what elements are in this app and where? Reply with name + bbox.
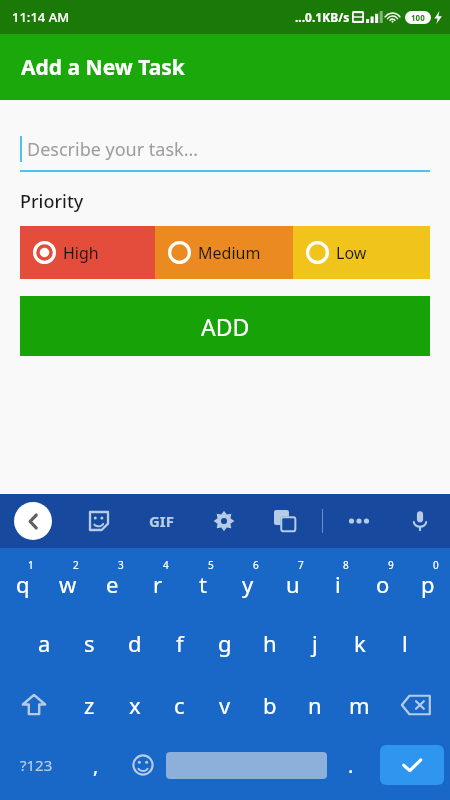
staticText: u: [286, 569, 300, 599]
button[interactable]: Enter: [380, 745, 444, 785]
staticText: ADD: [201, 311, 250, 342]
button[interactable]: Describe your task…: [20, 126, 430, 172]
button[interactable]: g: [202, 612, 247, 674]
button[interactable]: 7: [270, 552, 315, 612]
button[interactable]: Keyboard settings: [209, 506, 239, 536]
button[interactable]: 9: [360, 552, 405, 612]
staticText: g: [218, 628, 232, 658]
staticText: o: [376, 569, 390, 599]
button[interactable]: z: [67, 674, 112, 736]
button[interactable]: 6: [225, 552, 270, 612]
staticText: e: [106, 569, 119, 599]
staticText: ?123: [20, 755, 53, 775]
button[interactable]: 1: [0, 552, 45, 612]
button[interactable]: n: [292, 674, 337, 736]
button[interactable]: Backspace: [382, 674, 450, 736]
staticText: n: [308, 690, 322, 720]
button[interactable]: c: [157, 674, 202, 736]
staticText: Medium: [198, 242, 261, 264]
button[interactable]: k: [337, 612, 382, 674]
button[interactable]: 2: [45, 552, 90, 612]
button[interactable]: j: [292, 612, 337, 674]
button[interactable]: Medium: [155, 226, 293, 279]
staticText: 0: [433, 558, 439, 572]
staticText: 8: [343, 558, 349, 572]
staticText: p: [421, 569, 435, 599]
button[interactable]: 5: [180, 552, 225, 612]
staticText: Add a New Task: [21, 53, 185, 82]
button[interactable]: 0: [405, 552, 450, 612]
button[interactable]: GIF: [145, 507, 178, 535]
button[interactable]: Emoji: [119, 736, 166, 794]
button[interactable]: h: [247, 612, 292, 674]
staticText: a: [38, 628, 51, 658]
staticText: k: [354, 628, 366, 658]
staticText: 9: [388, 558, 394, 572]
staticText: .: [348, 752, 354, 779]
button[interactable]: 3: [90, 552, 135, 612]
staticText: Describe your task…: [27, 137, 198, 162]
button[interactable]: l: [382, 612, 427, 674]
staticText: GIF: [149, 511, 174, 531]
button[interactable]: High: [20, 226, 155, 279]
staticText: t: [199, 569, 207, 599]
staticText: 3: [118, 558, 124, 572]
button[interactable]: More options: [345, 507, 373, 535]
staticText: m: [349, 690, 370, 720]
button[interactable]: ADD: [20, 296, 430, 356]
staticText: i: [335, 569, 341, 599]
staticText: 2: [73, 558, 79, 572]
button[interactable]: 4: [135, 552, 180, 612]
staticText: h: [263, 628, 277, 658]
staticText: c: [174, 690, 185, 720]
staticText: s: [84, 628, 95, 658]
staticText: x: [129, 690, 141, 720]
button[interactable]: 8: [315, 552, 360, 612]
staticText: d: [128, 628, 142, 658]
staticText: l: [402, 628, 408, 658]
button[interactable]: .: [327, 736, 374, 794]
button[interactable]: Translate: [270, 506, 300, 536]
staticText: q: [16, 569, 30, 599]
staticText: b: [263, 690, 277, 720]
button[interactable]: Space: [166, 736, 327, 794]
button[interactable]: a: [22, 612, 67, 674]
staticText: 11:14 AM: [12, 8, 70, 26]
staticText: r: [153, 569, 163, 599]
staticText: z: [84, 690, 95, 720]
button[interactable]: f: [157, 612, 202, 674]
staticText: 5: [208, 558, 214, 572]
button[interactable]: ,: [72, 736, 119, 794]
button[interactable]: ?123: [0, 736, 72, 794]
staticText: 1: [28, 558, 34, 572]
button[interactable]: v: [202, 674, 247, 736]
staticText: v: [219, 690, 231, 720]
button[interactable]: x: [112, 674, 157, 736]
button[interactable]: m: [337, 674, 382, 736]
staticText: y: [242, 569, 254, 599]
button[interactable]: b: [247, 674, 292, 736]
button[interactable]: s: [67, 612, 112, 674]
staticText: 7: [298, 558, 304, 572]
staticText: 100: [411, 12, 425, 23]
button[interactable]: Back: [14, 502, 52, 540]
staticText: ...0.1KB/s: [295, 9, 350, 25]
button[interactable]: Low: [293, 226, 430, 279]
staticText: 6: [253, 558, 259, 572]
staticText: Low: [336, 242, 367, 264]
staticText: High: [63, 242, 99, 264]
button[interactable]: Shift: [0, 674, 67, 736]
staticText: ,: [93, 752, 99, 779]
staticText: w: [59, 569, 77, 599]
button[interactable]: d: [112, 612, 157, 674]
button[interactable]: Stickers: [84, 506, 114, 536]
staticText: f: [176, 628, 184, 658]
staticText: Priority: [20, 189, 84, 214]
button[interactable]: Voice input: [404, 505, 436, 537]
staticText: 4: [163, 558, 169, 572]
staticText: j: [312, 628, 318, 658]
